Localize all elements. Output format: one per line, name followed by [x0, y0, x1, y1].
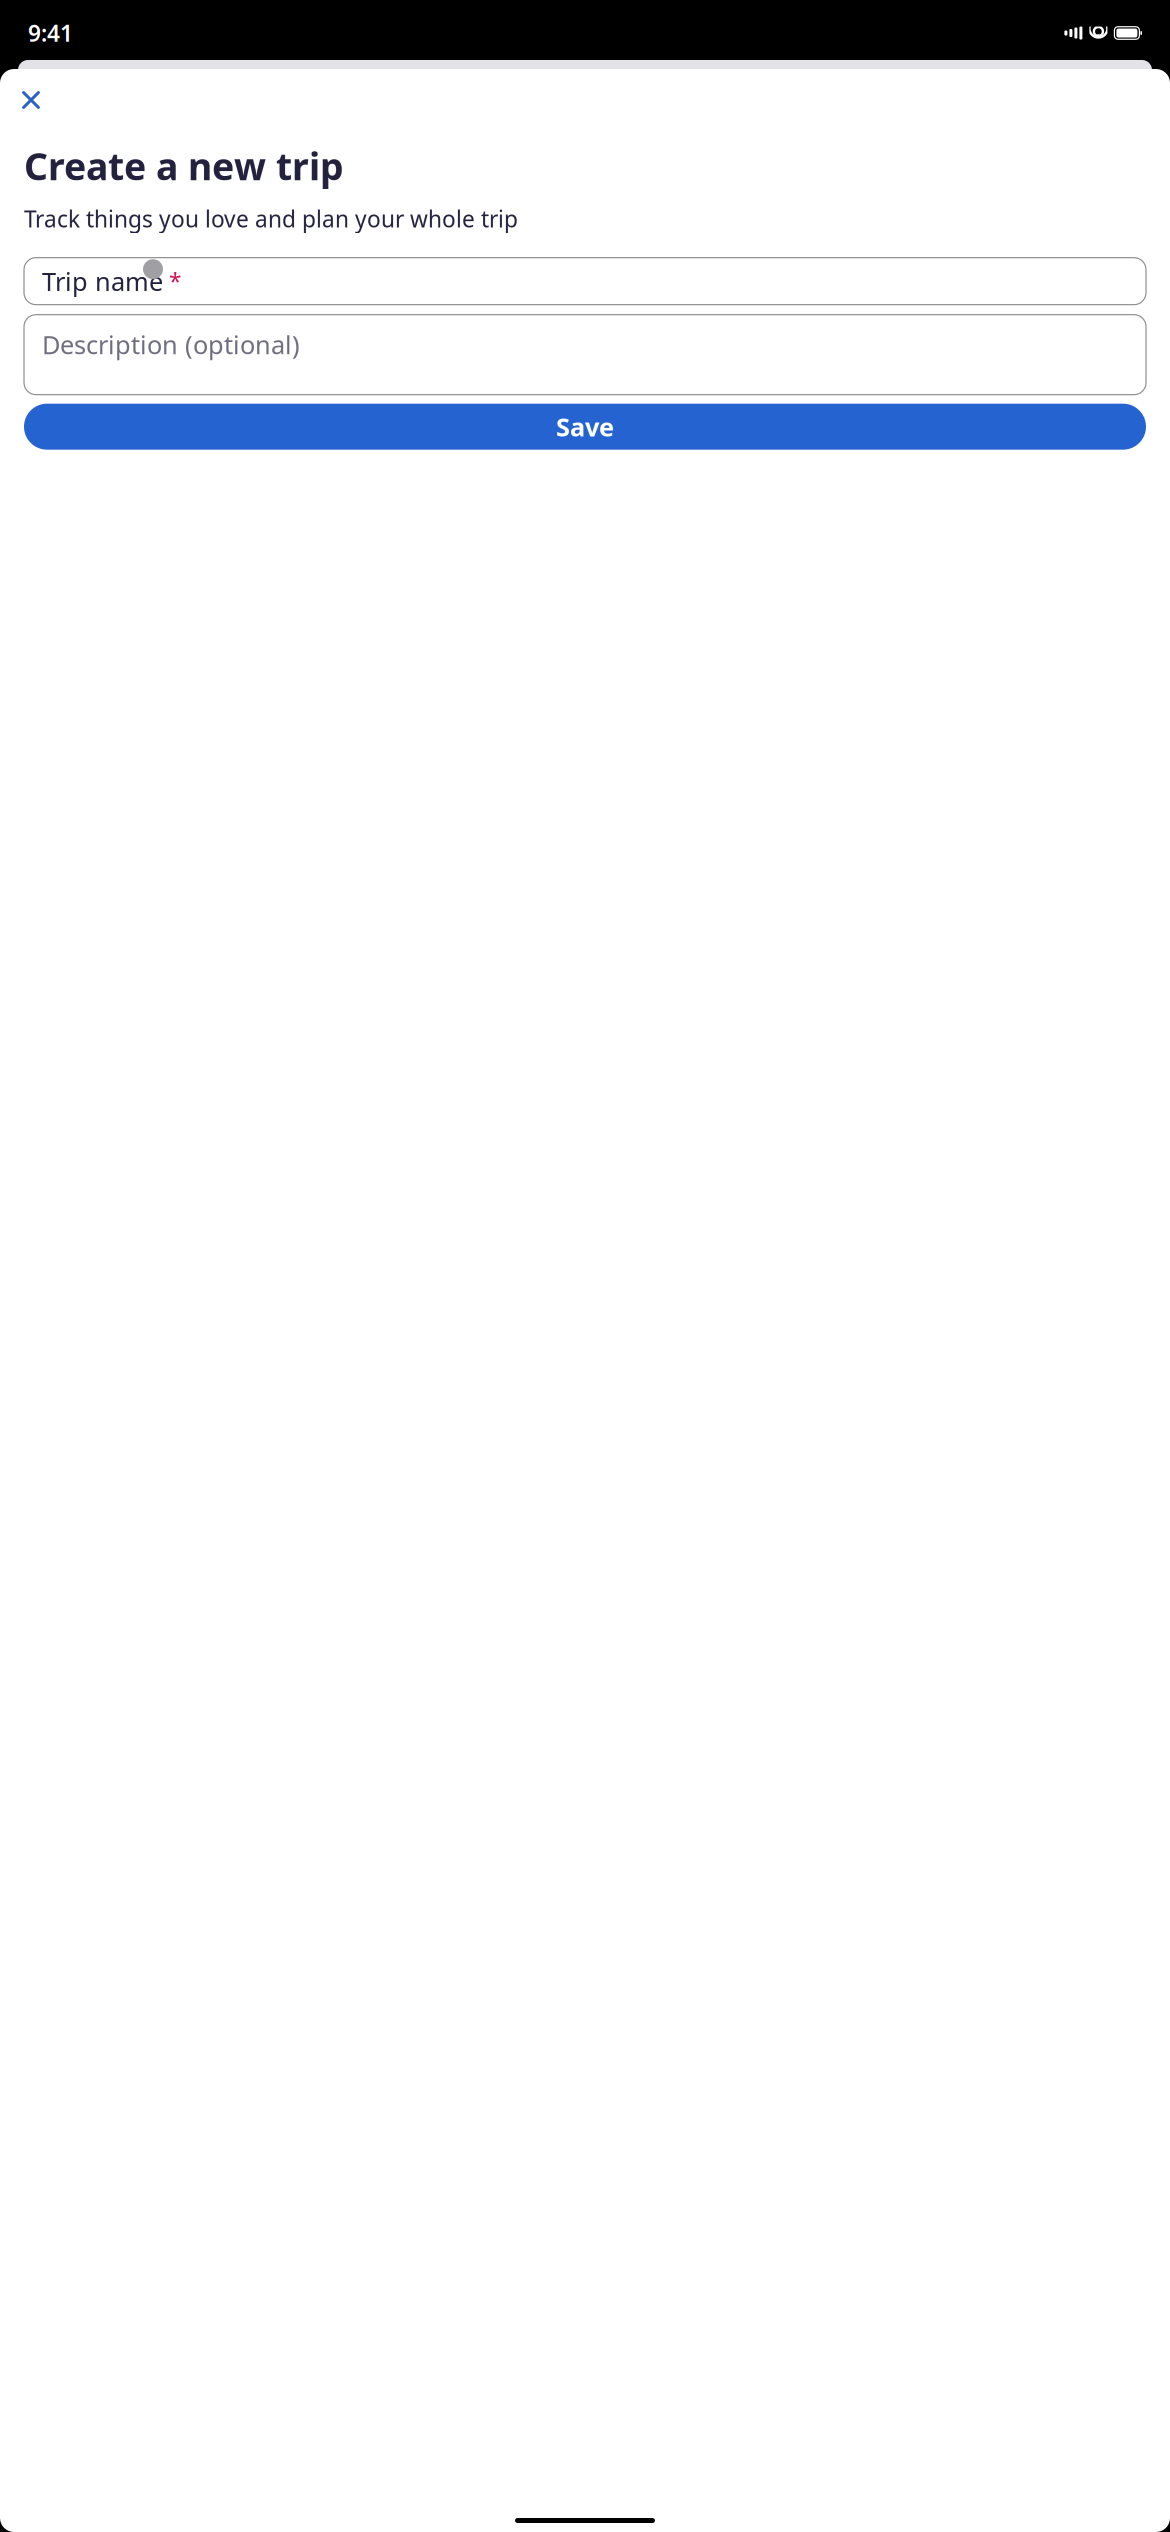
button[interactable]: Description (optional) [24, 315, 1146, 395]
button[interactable]: Trip name [24, 258, 1146, 305]
staticText: Description (optional) [42, 328, 300, 361]
button[interactable]: Save [24, 404, 1146, 450]
staticText: Save [556, 410, 614, 443]
staticText: Trip name [42, 264, 163, 298]
staticText: * [163, 266, 181, 296]
button[interactable]: Close [12, 81, 50, 119]
staticText: 9:41 [28, 18, 73, 48]
staticText: Create a new trip [24, 141, 344, 191]
staticText: Track things you love and plan your whol… [24, 204, 518, 234]
